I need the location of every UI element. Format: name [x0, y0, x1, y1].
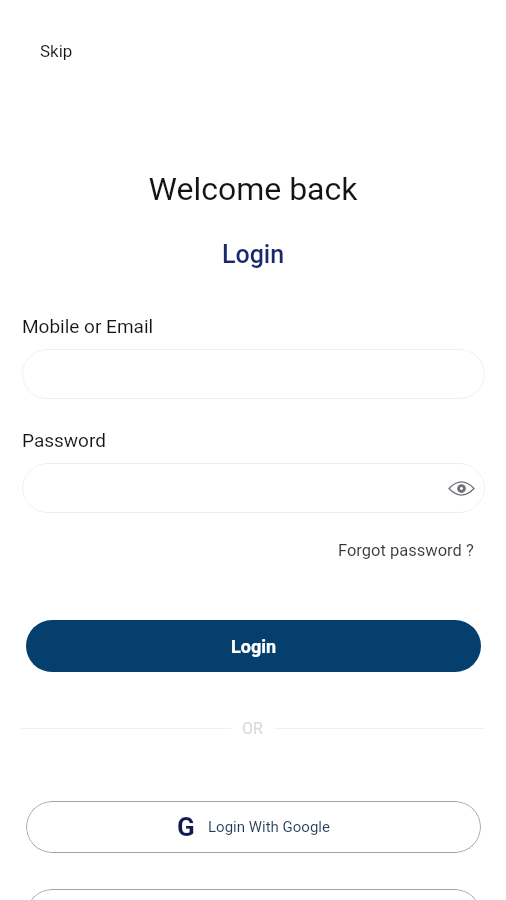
staticText: Login — [231, 636, 277, 657]
button[interactable]: Forgot password ? — [334, 538, 478, 563]
button[interactable]: Login — [26, 620, 481, 672]
staticText: Password — [22, 429, 106, 451]
staticText: Login — [0, 240, 506, 269]
staticText: Login With Google — [208, 818, 330, 836]
staticText: Skip — [40, 41, 73, 61]
staticText: Forgot password ? — [338, 541, 474, 560]
staticText: OR — [242, 719, 263, 738]
button[interactable]: G — [26, 801, 481, 853]
button[interactable]: Skip — [32, 37, 81, 65]
staticText: G — [177, 812, 195, 842]
button[interactable]: Login With Facebook — [26, 889, 481, 900]
button[interactable]: Show password — [446, 473, 476, 503]
button[interactable]: Show password — [22, 463, 485, 513]
staticText: Mobile or Email — [22, 315, 154, 337]
button[interactable] — [22, 349, 485, 399]
staticText: Welcome back — [0, 170, 506, 208]
